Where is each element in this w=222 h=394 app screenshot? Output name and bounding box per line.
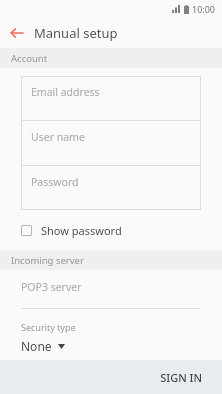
staticText: Manual setup xyxy=(34,24,118,42)
button[interactable]: User name xyxy=(21,121,201,165)
button[interactable]: Password xyxy=(21,166,201,210)
staticText: Show password xyxy=(41,223,122,238)
staticText: SIGN IN xyxy=(160,370,202,385)
button[interactable]: SIGN IN xyxy=(0,360,222,394)
button[interactable]: Back xyxy=(6,22,28,44)
staticText: Email address xyxy=(31,85,100,99)
button[interactable]: Show password xyxy=(0,218,222,242)
button[interactable]: Email address xyxy=(21,76,201,120)
staticText: Incoming server xyxy=(11,254,84,267)
staticText: Account xyxy=(11,52,48,65)
staticText: 10:00 xyxy=(192,3,216,15)
staticText: Security type xyxy=(21,321,76,333)
staticText: Password xyxy=(31,175,79,189)
button[interactable]: Security type xyxy=(0,321,222,354)
button[interactable]: POP3 server xyxy=(0,270,222,309)
staticText: None xyxy=(21,338,52,354)
staticText: POP3 server xyxy=(21,280,82,294)
staticText: User name xyxy=(31,130,85,144)
